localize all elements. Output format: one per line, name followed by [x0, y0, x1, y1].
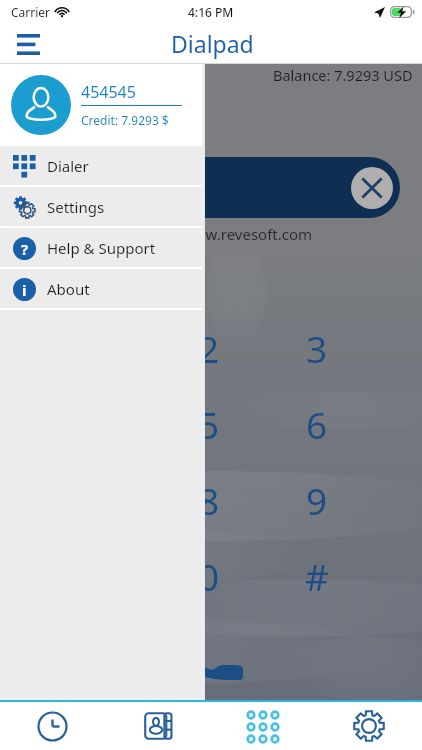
button[interactable]: Contacts [105, 702, 210, 750]
staticText: Balance: 7.9293 USD [273, 65, 413, 85]
staticText: Help & Support [47, 238, 156, 258]
button[interactable]: Settings [316, 702, 422, 750]
button[interactable]: Recents [0, 702, 105, 750]
button[interactable]: Clear number [351, 167, 393, 209]
staticText: ? [21, 239, 29, 259]
staticText: 3 [306, 323, 328, 367]
staticText: Carrier [11, 4, 51, 20]
button[interactable]: Settings [0, 187, 202, 228]
button[interactable]: Open navigation menu [6, 24, 50, 64]
button[interactable]: Dialer [0, 146, 202, 187]
button[interactable]: i [0, 269, 202, 310]
staticText: 9 [306, 475, 328, 519]
staticText: 5 [198, 399, 220, 443]
staticText: Dialer [47, 156, 89, 176]
staticText: About [47, 279, 90, 299]
staticText: 6 [306, 399, 328, 443]
staticText: Dialpad [171, 28, 254, 59]
staticText: 0 [198, 551, 220, 595]
staticText: 454545 [81, 81, 136, 103]
button[interactable]: Dialpad [210, 702, 316, 750]
staticText: 8 [198, 475, 220, 519]
staticText: 2 [198, 323, 220, 367]
staticText: i [22, 280, 27, 300]
button[interactable]: ? [0, 228, 202, 269]
staticText: # [305, 551, 329, 595]
staticText: 4:16 PM [188, 4, 234, 20]
staticText: Settings [47, 197, 105, 217]
staticText: Credit: 7.9293 $ [81, 112, 169, 128]
staticText: www.revesoft.com [182, 224, 313, 244]
